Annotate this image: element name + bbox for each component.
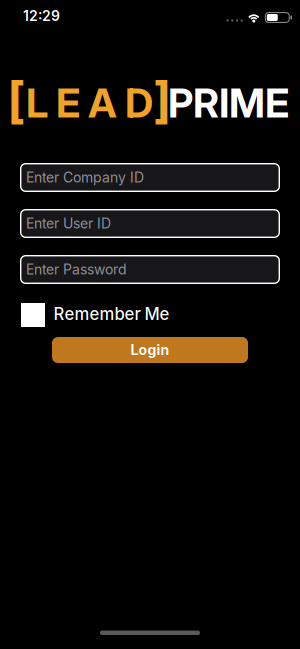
button[interactable]: Enter Company ID bbox=[20, 163, 280, 192]
button[interactable]: Remember Me bbox=[0, 303, 300, 327]
staticText: 12:29 bbox=[23, 7, 60, 24]
staticText: E bbox=[56, 79, 80, 127]
staticText: Enter Company ID bbox=[26, 169, 144, 186]
button[interactable]: Enter Password bbox=[20, 255, 280, 284]
staticText: Enter User ID bbox=[26, 215, 111, 232]
staticText: D bbox=[125, 79, 153, 127]
button[interactable]: Login bbox=[52, 337, 248, 363]
staticText: PRIME bbox=[168, 79, 289, 127]
staticText: [ bbox=[7, 70, 26, 130]
staticText: Remember Me bbox=[53, 304, 169, 324]
button[interactable]: Enter User ID bbox=[20, 209, 280, 238]
staticText: Login bbox=[130, 341, 169, 358]
staticText: ] bbox=[153, 70, 172, 130]
staticText: Enter Password bbox=[26, 261, 127, 278]
staticText: L bbox=[26, 79, 48, 127]
staticText: A bbox=[88, 79, 117, 127]
